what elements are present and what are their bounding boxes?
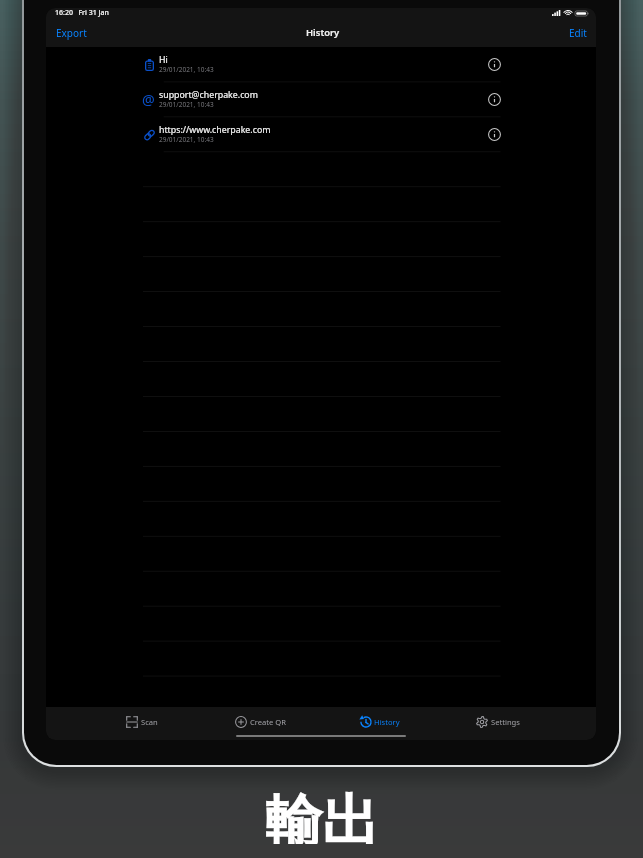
- other: Info: [488, 93, 501, 106]
- staticText: Settings: [491, 717, 520, 727]
- button[interactable]: @: [46, 82, 596, 117]
- button[interactable]: https://www.cherpake.com: [46, 117, 596, 152]
- button[interactable]: Hi: [46, 47, 596, 82]
- staticText: support@cherpake.com: [159, 89, 258, 101]
- staticText: 29/01/2021, 10:43: [159, 65, 214, 74]
- staticText: Create QR: [250, 717, 286, 727]
- button[interactable]: History: [360, 711, 460, 733]
- staticText: 輸出: [265, 786, 379, 844]
- button[interactable]: Settings: [476, 711, 578, 733]
- staticText: Scan: [141, 717, 158, 727]
- staticText: 29/01/2021, 10:43: [159, 135, 214, 144]
- staticText: History: [306, 26, 340, 39]
- button[interactable]: Edit: [561, 22, 596, 44]
- button[interactable]: Scan: [126, 711, 182, 733]
- staticText: 16:20 Fri 31 Jan: [55, 8, 109, 18]
- other: Info: [488, 128, 501, 141]
- staticText: Hi: [159, 54, 168, 66]
- staticText: Export: [56, 26, 87, 40]
- staticText: https://www.cherpake.com: [159, 124, 271, 136]
- staticText: 29/01/2021, 10:43: [159, 100, 214, 109]
- staticText: @: [142, 90, 154, 106]
- staticText: History: [374, 717, 400, 727]
- staticText: Edit: [569, 26, 587, 40]
- button[interactable]: Export: [46, 22, 95, 44]
- button[interactable]: Create QR: [235, 711, 345, 733]
- other: Info: [488, 58, 501, 71]
